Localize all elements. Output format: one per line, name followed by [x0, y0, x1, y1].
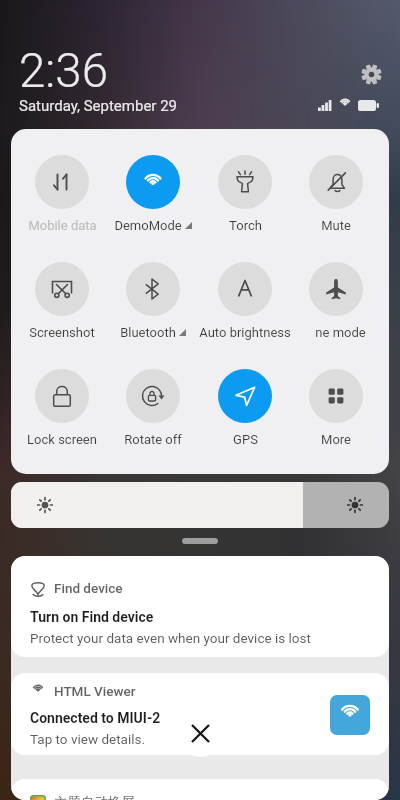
staticText: Bluetooth [120, 325, 176, 340]
button[interactable]: Find device [11, 556, 389, 657]
staticText: Find device [54, 580, 123, 596]
button[interactable] [200, 155, 290, 237]
button[interactable] [108, 369, 198, 451]
button[interactable] [108, 262, 198, 344]
staticText: Torch [229, 218, 262, 233]
staticText: Rotate off [124, 432, 182, 447]
staticText: GPS [233, 432, 258, 447]
button[interactable] [200, 369, 290, 451]
staticText: Protect your data even when your device … [30, 630, 311, 646]
staticText: Turn on Find device [30, 609, 154, 625]
staticText: Saturday, September 29 [19, 97, 178, 115]
button[interactable] [291, 262, 381, 344]
staticText: Connected to MIUI-2 [30, 710, 161, 726]
staticText: ne mode [315, 325, 366, 340]
button[interactable] [108, 155, 198, 237]
button[interactable] [200, 262, 290, 344]
button[interactable]: HTML Viewer [11, 673, 389, 755]
button[interactable] [17, 369, 107, 451]
staticText: Mobile data [28, 218, 97, 233]
button[interactable]: Brightness [11, 482, 389, 528]
staticText: HTML Viewer [54, 683, 136, 699]
staticText: 主题自动换屏 [54, 794, 135, 800]
staticText: More [321, 432, 351, 447]
button[interactable] [17, 155, 107, 237]
staticText: Screenshot [29, 325, 95, 340]
staticText: Mute [321, 218, 351, 233]
staticText: Tap to view details. [30, 731, 146, 747]
staticText: DemoMode [114, 218, 182, 233]
button[interactable]: Close [177, 710, 224, 757]
button[interactable]: Settings [358, 61, 384, 87]
button[interactable]: 主题自动换屏 [11, 779, 389, 800]
button[interactable] [17, 262, 107, 344]
staticText: 2:36 [19, 43, 109, 99]
staticText: Auto brightness [199, 325, 291, 340]
button[interactable] [291, 155, 381, 237]
staticText: Lock screen [27, 432, 97, 447]
button[interactable] [291, 369, 381, 451]
